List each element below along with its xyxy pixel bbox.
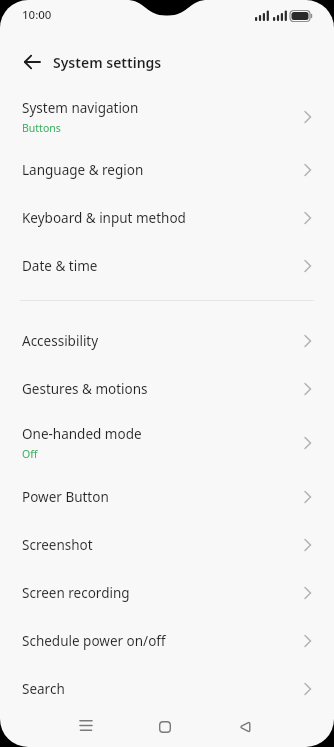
staticText: Off xyxy=(22,447,38,461)
staticText: One-handed mode xyxy=(22,425,142,443)
staticText: Screen recording xyxy=(22,584,130,602)
staticText: Accessibility xyxy=(22,332,99,350)
button[interactable]: Schedule power on/off xyxy=(0,617,334,665)
button[interactable]: Accessibility xyxy=(0,317,334,365)
staticText: Gestures & motions xyxy=(22,380,148,398)
button[interactable]: Language & region xyxy=(0,146,334,194)
button[interactable]: Search xyxy=(0,665,334,713)
staticText: Power Button xyxy=(22,488,109,506)
staticText: Buttons xyxy=(22,121,61,135)
button[interactable]: Screenshot xyxy=(0,521,334,569)
staticText: Date & time xyxy=(22,257,98,275)
staticText: Language & region xyxy=(22,161,144,179)
staticText: Search xyxy=(22,680,65,698)
button[interactable]: One-handed mode xyxy=(0,413,334,473)
button[interactable] xyxy=(70,718,102,746)
button[interactable]: Screen recording xyxy=(0,569,334,617)
staticText: Keyboard & input method xyxy=(22,209,186,227)
button[interactable]: Keyboard & input method xyxy=(0,194,334,242)
staticText: System navigation xyxy=(22,99,139,117)
button[interactable]: Power Button xyxy=(0,473,334,521)
staticText: Schedule power on/off xyxy=(22,632,166,650)
button[interactable]: System navigation xyxy=(0,88,334,146)
button[interactable] xyxy=(20,50,44,74)
button[interactable] xyxy=(149,718,181,746)
button[interactable]: Date & time xyxy=(0,242,334,290)
staticText: System settings xyxy=(53,53,162,72)
button[interactable]: Gestures & motions xyxy=(0,365,334,413)
staticText: Screenshot xyxy=(22,536,93,554)
staticText: 10:00 xyxy=(22,7,52,23)
button[interactable] xyxy=(229,718,261,746)
